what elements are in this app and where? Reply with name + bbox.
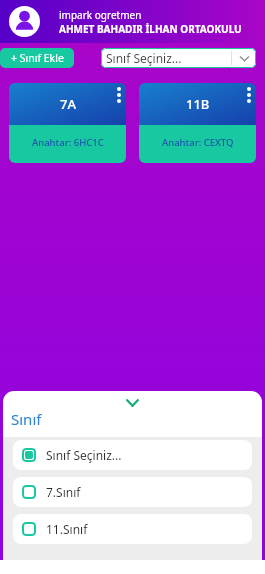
staticText: 11.Sınıf	[46, 521, 88, 537]
staticText: Sınıf Seçiniz...	[46, 447, 122, 463]
button[interactable]: More options	[247, 87, 251, 103]
staticText: impark ogretmen	[59, 8, 142, 22]
button[interactable]: More options	[117, 87, 121, 103]
staticText: 7A	[60, 95, 76, 113]
staticText: Anahtar: CEXTQ	[162, 136, 234, 149]
staticText: Sınıf	[11, 409, 42, 429]
button[interactable]: 11.Sınıf	[13, 514, 252, 544]
button[interactable]: + Sınıf Ekle	[0, 48, 74, 68]
button[interactable]: 7A	[9, 83, 126, 163]
staticText: + Sınıf Ekle	[11, 51, 64, 65]
button[interactable]: 11B	[139, 83, 256, 163]
staticText: 7.Sınıf	[46, 484, 81, 500]
staticText: AHMET BAHADIR İLHAN ORTAOKULU	[59, 22, 242, 36]
button[interactable]: Collapse	[126, 399, 139, 407]
button[interactable]: Sınıf Seçiniz...	[101, 48, 256, 68]
button[interactable]: Sınıf Seçiniz...	[13, 440, 252, 470]
staticText: 11B	[186, 95, 210, 113]
button[interactable]: 7.Sınıf	[13, 477, 252, 507]
staticText: Sınıf Seçiniz...	[106, 50, 182, 66]
staticText: Anahtar: 6HC1C	[32, 136, 104, 149]
